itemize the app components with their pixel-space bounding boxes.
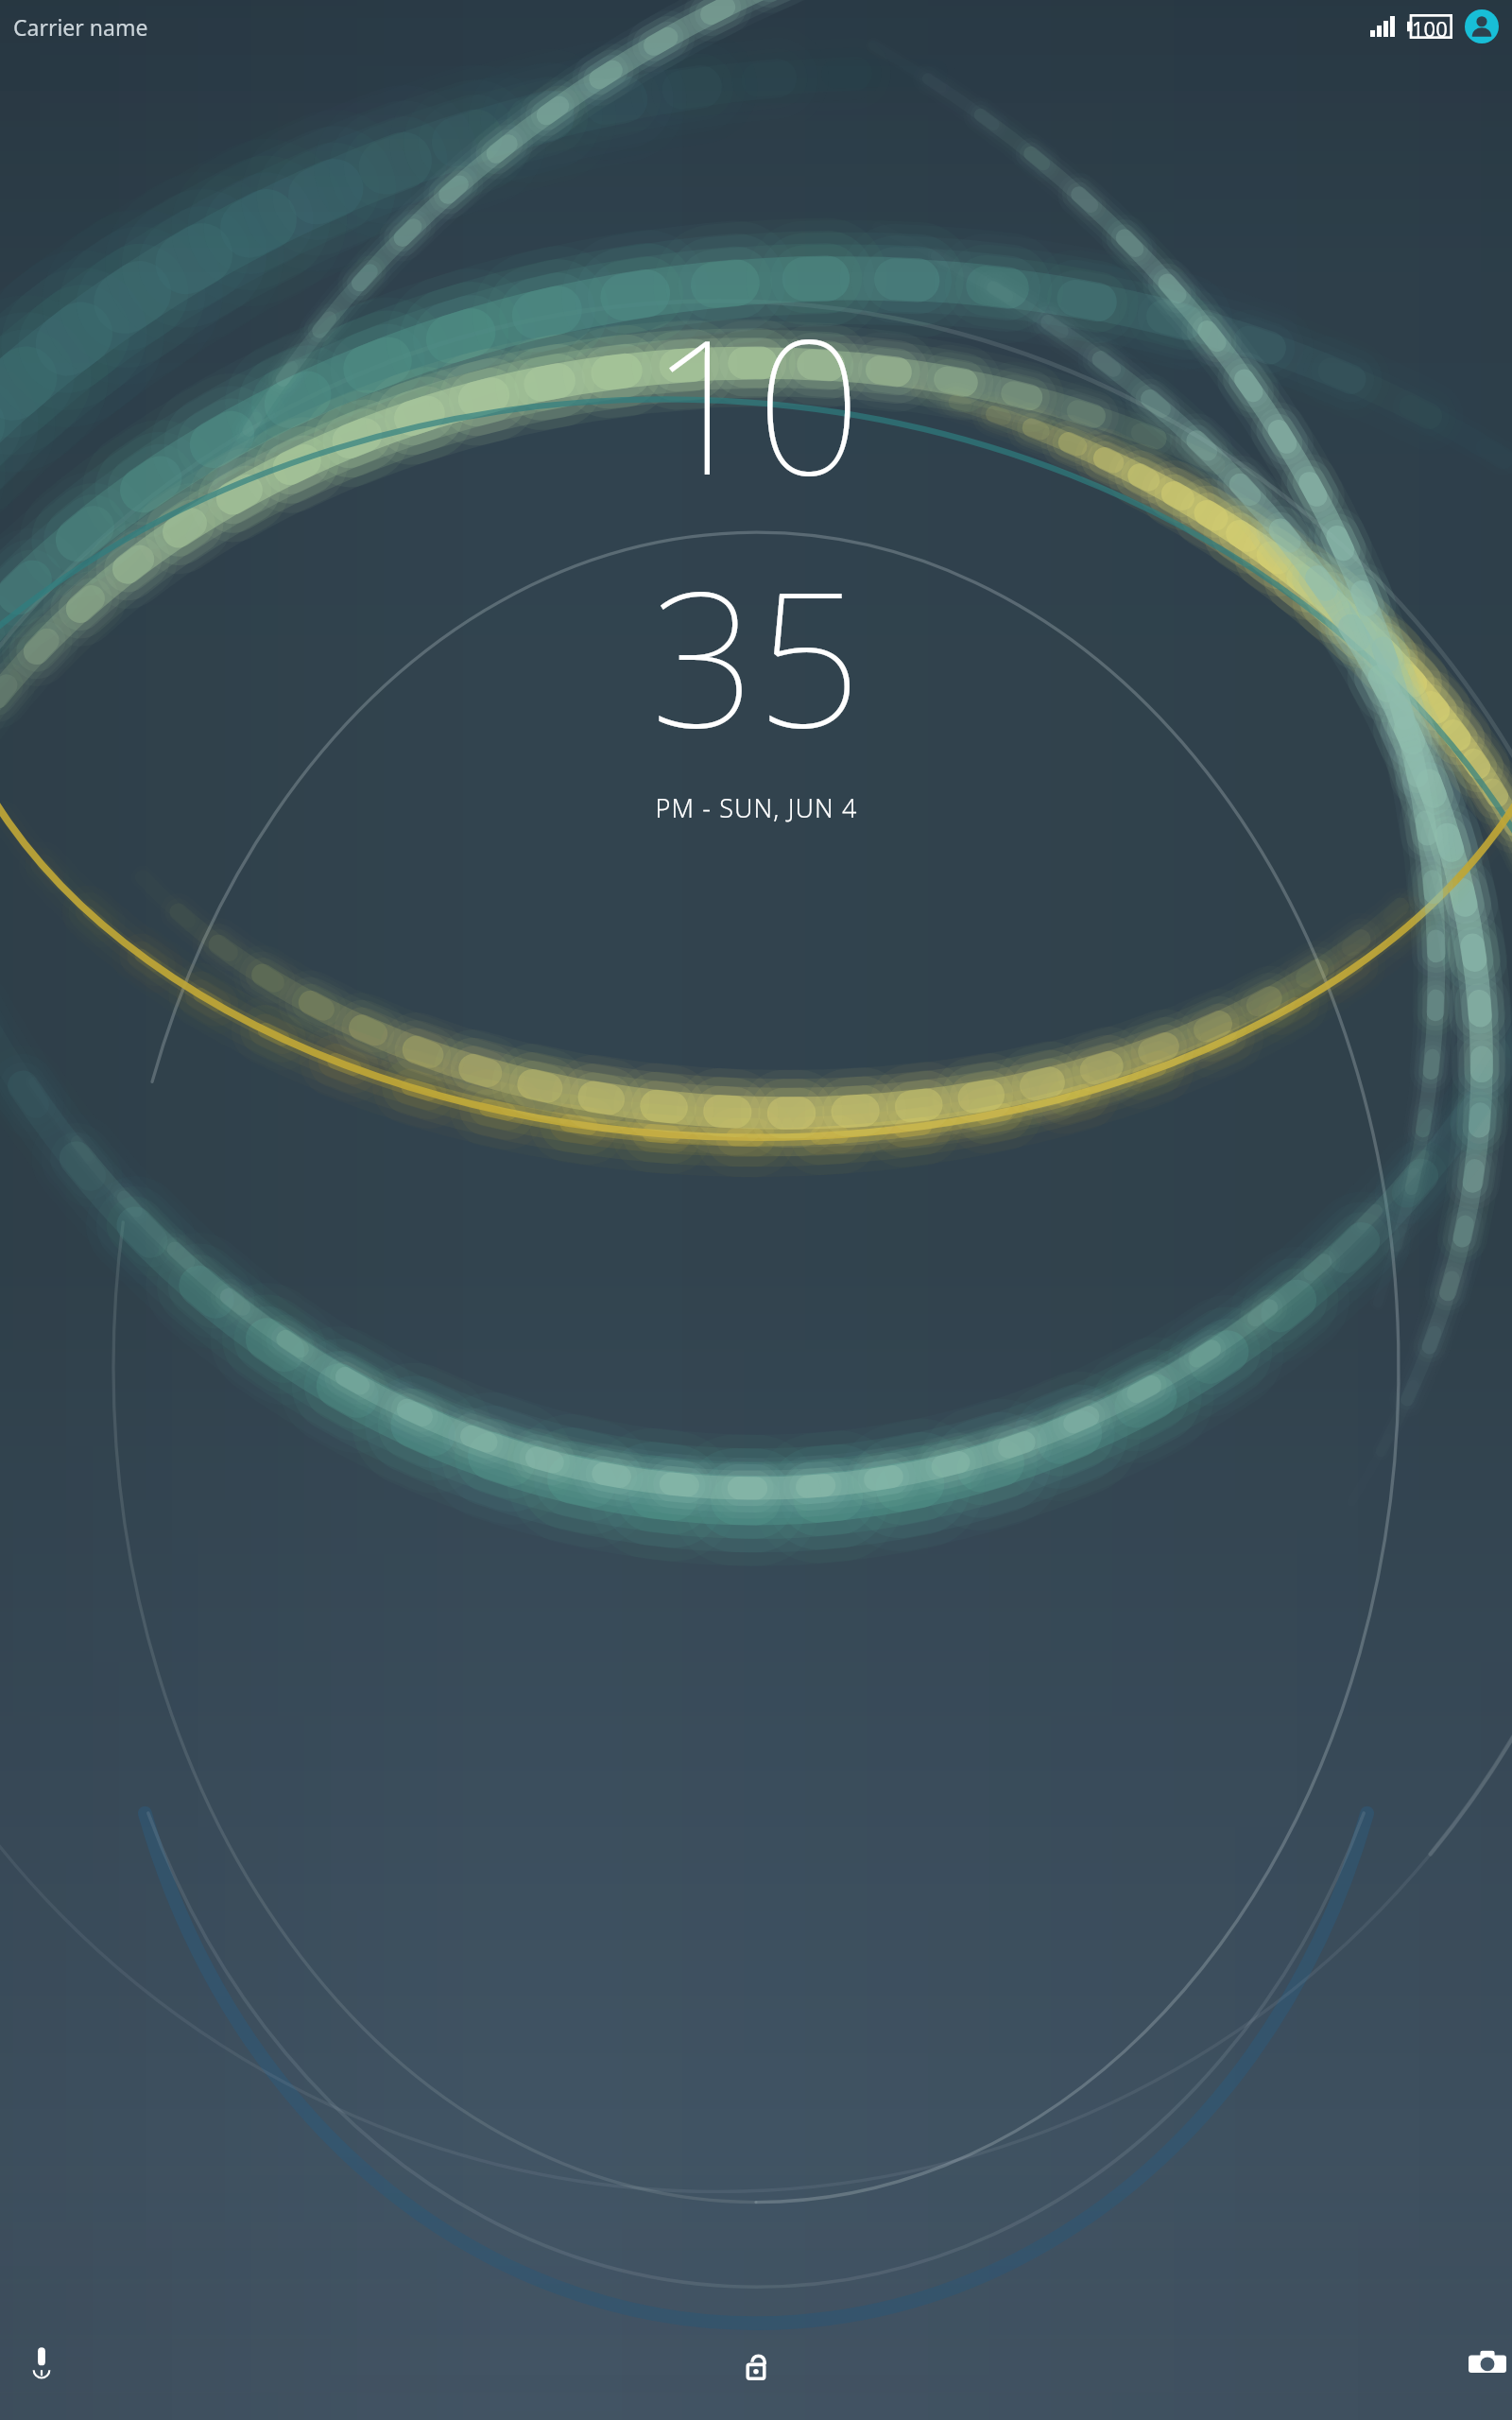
button[interactable]: Unlock	[716, 2324, 796, 2403]
staticText: 100	[1412, 14, 1448, 39]
staticText: PM - SUN, JUN 4	[655, 790, 858, 825]
button[interactable]: Voice assist	[6, 2327, 77, 2399]
staticText: Carrier name	[13, 12, 148, 42]
staticText: 10	[650, 276, 862, 528]
button[interactable]: Camera	[1440, 2327, 1512, 2399]
staticText: 35	[650, 528, 862, 781]
button[interactable]: 10	[0, 276, 1512, 825]
